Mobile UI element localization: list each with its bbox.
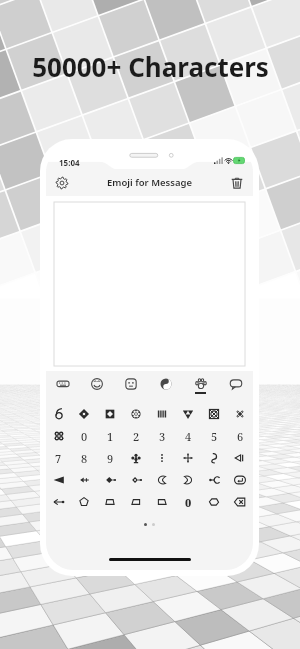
button[interactable]: Faces [114, 371, 148, 396]
staticText: 4 [185, 429, 192, 444]
button[interactable] [123, 403, 149, 425]
button[interactable] [46, 491, 71, 513]
staticText: 7 [55, 451, 62, 466]
staticText: Emoji for Message [72, 176, 227, 189]
button[interactable] [149, 403, 175, 425]
button[interactable]: Settings [52, 173, 72, 193]
button[interactable] [201, 447, 227, 469]
button[interactable] [97, 403, 123, 425]
staticText: 6 [237, 429, 244, 444]
button[interactable] [175, 469, 201, 491]
button[interactable] [71, 491, 97, 513]
button[interactable] [97, 469, 123, 491]
button[interactable]: 3 [149, 425, 175, 447]
button[interactable]: 6 [227, 425, 253, 447]
staticText: 0 [185, 495, 192, 510]
staticText: 1 [107, 429, 114, 444]
button[interactable] [201, 469, 227, 491]
button[interactable]: 5 [201, 425, 227, 447]
staticText: 3 [159, 429, 166, 444]
staticText: 15:04 [59, 157, 80, 168]
button[interactable] [71, 403, 97, 425]
button[interactable] [123, 469, 149, 491]
button[interactable] [227, 491, 253, 513]
button[interactable] [46, 469, 71, 491]
button[interactable] [46, 425, 71, 447]
button[interactable]: 7 [46, 447, 71, 469]
button[interactable]: Animals [183, 371, 218, 396]
button[interactable] [149, 469, 175, 491]
button[interactable]: 0 [71, 425, 97, 447]
button[interactable] [175, 403, 201, 425]
button[interactable] [227, 403, 253, 425]
button[interactable] [149, 491, 175, 513]
button[interactable] [123, 447, 149, 469]
staticText: 2 [133, 429, 140, 444]
button[interactable] [46, 403, 71, 425]
button[interactable]: 2 [123, 425, 149, 447]
button[interactable] [227, 447, 253, 469]
button[interactable] [123, 491, 149, 513]
button[interactable] [149, 447, 175, 469]
staticText: 0 [81, 429, 88, 444]
button[interactable]: Delete [227, 173, 247, 193]
staticText: 9 [107, 451, 114, 466]
button[interactable] [227, 469, 253, 491]
button[interactable]: Smileys [80, 371, 114, 396]
button[interactable] [201, 491, 227, 513]
button[interactable]: 1 [97, 425, 123, 447]
button[interactable]: Chat [218, 371, 253, 396]
button[interactable] [71, 469, 97, 491]
button[interactable] [201, 403, 227, 425]
staticText: 50000+ Characters [32, 49, 269, 84]
button[interactable]: Recent [46, 371, 80, 396]
staticText: 8 [81, 451, 88, 466]
button[interactable]: Symbols [148, 371, 183, 396]
staticText: 5 [211, 429, 218, 444]
button[interactable]: 4 [175, 425, 201, 447]
button[interactable]: 9 [97, 447, 123, 469]
button[interactable] [97, 491, 123, 513]
button[interactable]: 0 [175, 491, 201, 513]
button[interactable]: 8 [71, 447, 97, 469]
button[interactable] [175, 447, 201, 469]
